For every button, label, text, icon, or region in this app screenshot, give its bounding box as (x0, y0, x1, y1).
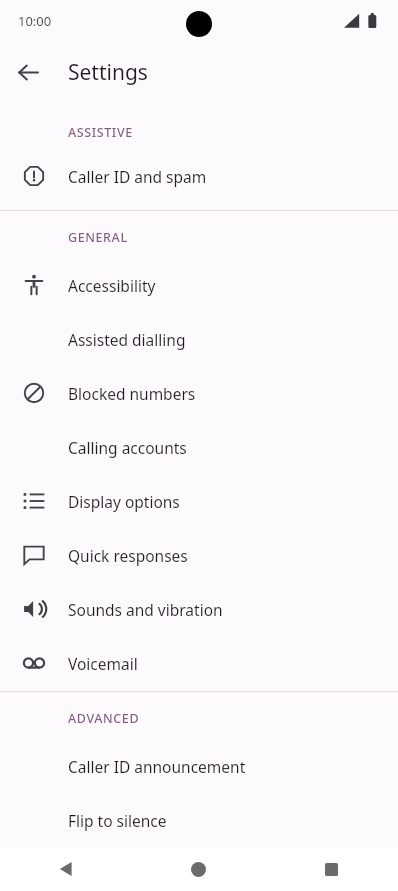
staticText: Sounds and vibration (68, 599, 223, 620)
button[interactable]: Caller ID and spam (0, 153, 398, 199)
button[interactable]: Assisted dialling (0, 312, 398, 366)
button[interactable]: Calling accounts (0, 420, 398, 474)
button[interactable]: Sounds and vibration (0, 582, 398, 636)
button[interactable]: Back (0, 847, 132, 891)
staticText: ADVANCED (68, 710, 140, 727)
button[interactable]: Display options (0, 474, 398, 528)
staticText: Assisted dialling (68, 329, 186, 350)
button[interactable]: Voicemail (0, 636, 398, 690)
button[interactable]: Back (6, 50, 50, 94)
staticText: Accessibility (68, 275, 156, 296)
staticText: Voicemail (68, 653, 138, 674)
staticText: Blocked numbers (68, 383, 196, 404)
staticText: Quick responses (68, 545, 188, 566)
staticText: 10:00 (18, 12, 52, 30)
button[interactable]: Flip to silence (0, 793, 398, 847)
button[interactable]: Home (132, 847, 265, 891)
button[interactable]: Blocked numbers (0, 366, 398, 420)
staticText: Calling accounts (68, 437, 187, 458)
button[interactable]: Accessibility (0, 258, 398, 312)
staticText: Flip to silence (68, 810, 167, 831)
button[interactable]: Quick responses (0, 528, 398, 582)
staticText: ASSISTIVE (68, 124, 133, 141)
staticText: GENERAL (68, 229, 128, 246)
staticText: Caller ID announcement (68, 756, 246, 777)
staticText: Caller ID and spam (68, 166, 207, 187)
staticText: Display options (68, 491, 180, 512)
staticText: Settings (68, 58, 148, 87)
button[interactable]: Caller ID announcement (0, 739, 398, 793)
button[interactable]: Recent apps (265, 847, 398, 891)
